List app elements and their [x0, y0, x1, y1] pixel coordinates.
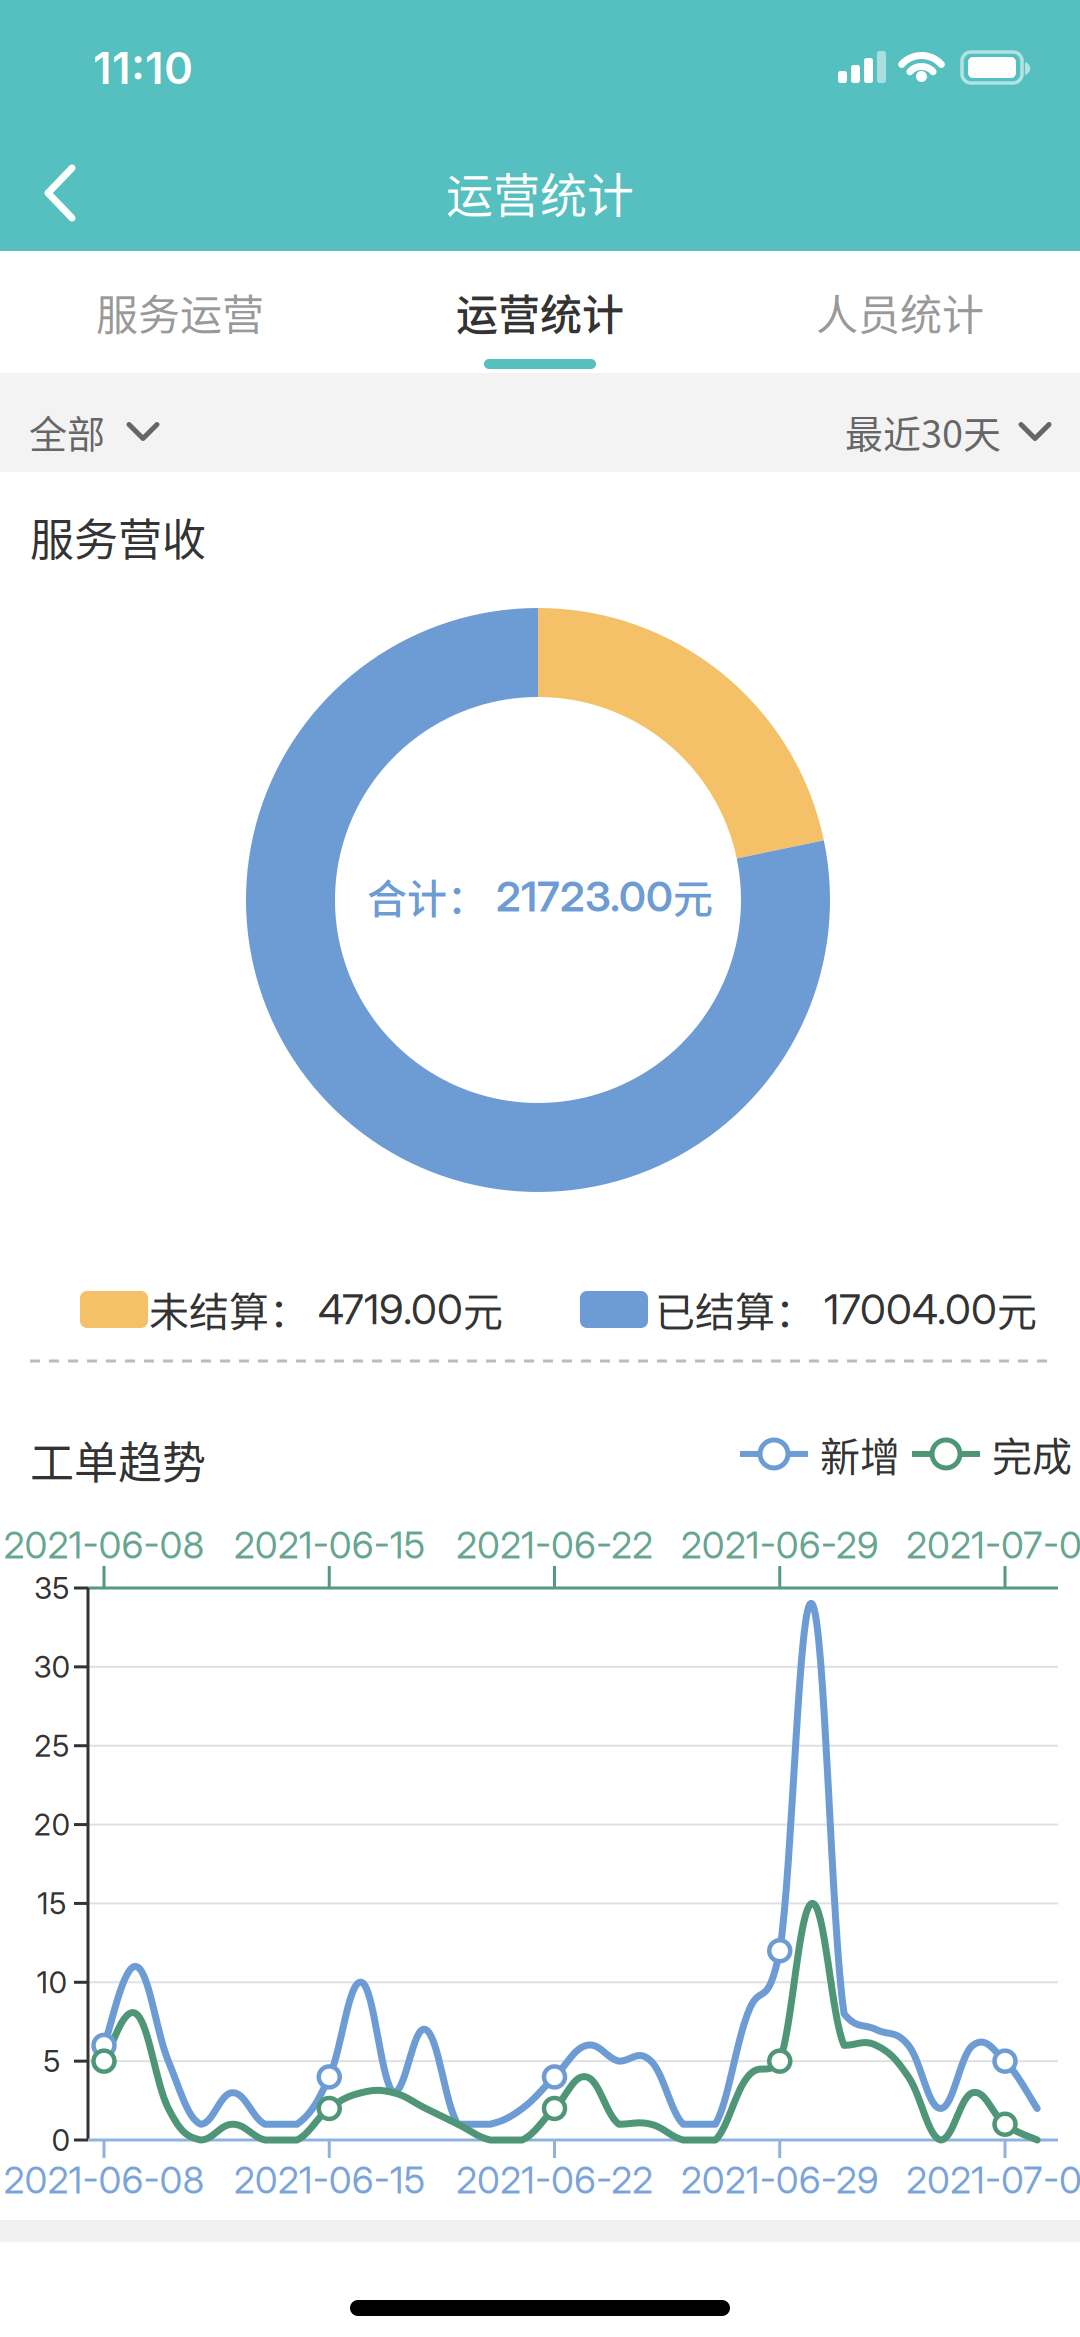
- button[interactable]: 完成: [912, 1425, 1072, 1483]
- staticText: 2021-06-22: [456, 1523, 653, 1567]
- staticText: 5: [43, 2043, 61, 2079]
- staticText: 运营统计: [456, 282, 624, 342]
- staticText: 2021-06-29: [681, 2158, 879, 2202]
- staticText: 2021-06-15: [234, 1523, 425, 1567]
- staticText: 2021-07-06: [906, 2158, 1080, 2202]
- staticText: 未结算： 4719.00元: [149, 1281, 503, 1337]
- staticText: 25: [34, 1728, 70, 1764]
- staticText: 人员统计: [816, 282, 984, 342]
- staticText: 完成: [992, 1425, 1072, 1483]
- staticText: 2021-06-08: [3, 2158, 204, 2202]
- staticText: 11:10: [93, 41, 193, 95]
- button[interactable]: 人员统计: [720, 262, 1080, 362]
- staticText: 工单趋势: [30, 1428, 206, 1492]
- staticText: 新增: [820, 1425, 900, 1483]
- staticText: 15: [37, 1885, 67, 1922]
- staticText: 合计： 21723.00元: [367, 868, 713, 924]
- staticText: 运营统计: [446, 158, 634, 226]
- staticText: 最近30天: [845, 404, 1001, 459]
- staticText: 2021-06-08: [3, 1523, 204, 1567]
- button[interactable]: 新增: [740, 1425, 900, 1483]
- button[interactable]: Back: [20, 143, 108, 243]
- staticText: 2021-06-15: [234, 2158, 425, 2202]
- button[interactable]: 全部: [29, 382, 159, 481]
- staticText: 服务营收: [30, 505, 206, 569]
- staticText: 全部: [29, 404, 105, 459]
- staticText: 已结算： 17004.00元: [655, 1281, 1037, 1337]
- staticText: 35: [34, 1570, 70, 1606]
- staticText: 20: [33, 1806, 70, 1843]
- staticText: 2021-06-29: [681, 1523, 879, 1567]
- staticText: 2021-06-22: [456, 2158, 653, 2202]
- staticText: 0: [51, 2122, 70, 2158]
- button[interactable]: 运营统计: [360, 262, 720, 362]
- staticText: 10: [36, 1964, 67, 2000]
- staticText: 服务运营: [96, 282, 264, 342]
- button[interactable]: 最近30天: [845, 382, 1051, 481]
- staticText: 2021-07-06: [906, 1523, 1080, 1567]
- staticText: 30: [33, 1649, 70, 1685]
- button[interactable]: 服务运营: [0, 262, 360, 362]
